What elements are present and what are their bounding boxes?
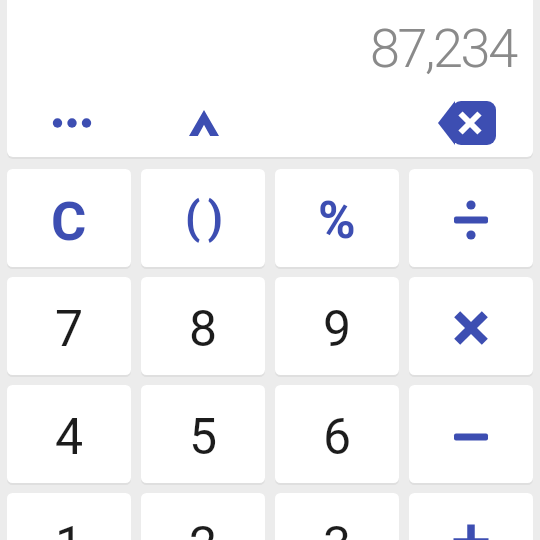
staticText: 87,234	[370, 17, 516, 80]
staticText: 6	[323, 408, 352, 467]
button[interactable]: 1	[7, 493, 131, 540]
button[interactable]	[42, 103, 102, 143]
button[interactable]: 2	[141, 493, 265, 540]
staticText: 4	[55, 408, 84, 467]
button[interactable]: 3	[275, 493, 399, 540]
button[interactable]: ( )	[141, 169, 265, 267]
button[interactable]	[409, 277, 533, 375]
staticText: 9	[323, 300, 352, 359]
staticText: 2	[189, 516, 218, 540]
staticText: C	[51, 190, 87, 253]
staticText: 8	[189, 300, 218, 359]
staticText: %	[318, 191, 356, 251]
staticText: 1	[55, 516, 84, 540]
button[interactable]	[409, 493, 533, 540]
button[interactable]	[409, 169, 533, 267]
staticText: 5	[189, 408, 218, 467]
staticText: 3	[323, 516, 352, 540]
button[interactable]: C	[7, 169, 131, 267]
staticText: ( )	[185, 192, 221, 244]
button[interactable]: 8	[141, 277, 265, 375]
button[interactable]: 5	[141, 385, 265, 483]
staticText: 7	[55, 300, 84, 359]
button[interactable]	[182, 103, 226, 143]
button[interactable]	[436, 98, 498, 148]
button[interactable]: %	[275, 169, 399, 267]
button[interactable]	[409, 385, 533, 483]
button[interactable]: 4	[7, 385, 131, 483]
button[interactable]: 6	[275, 385, 399, 483]
button[interactable]: 7	[7, 277, 131, 375]
button[interactable]: 9	[275, 277, 399, 375]
